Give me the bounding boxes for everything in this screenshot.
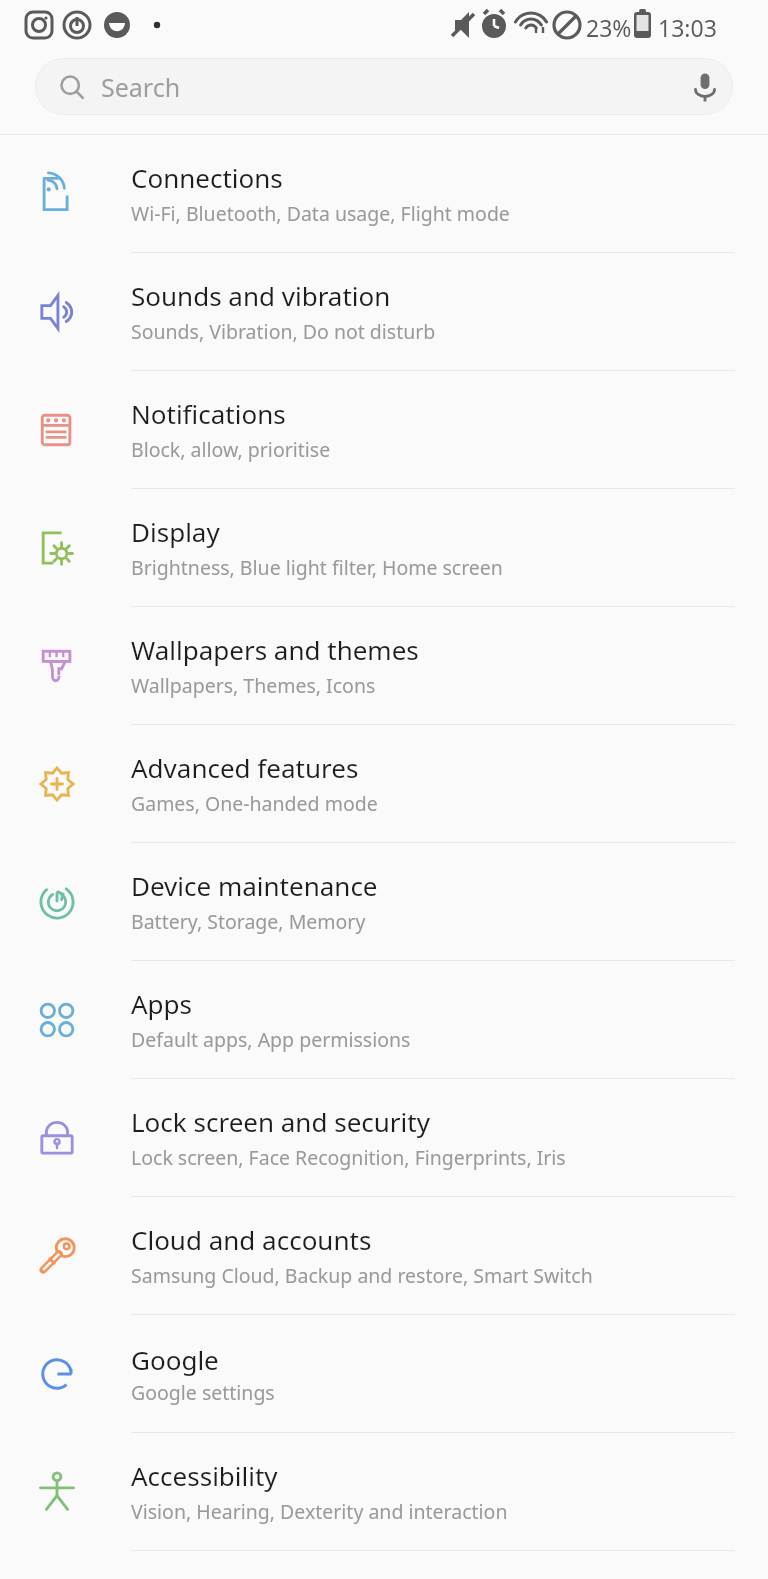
button[interactable]: Lock screen and security [0,1079,768,1197]
staticText: Apps [131,986,193,1021]
button[interactable]: Advanced features [0,725,768,843]
staticText: Display [131,514,220,549]
staticText: 23% [586,12,632,43]
staticText: Vision, Hearing, Dexterity and interacti… [131,1498,508,1525]
staticText: Samsung Cloud, Backup and restore, Smart… [131,1262,593,1289]
staticText: Wi-Fi, Bluetooth, Data usage, Flight mod… [131,200,510,227]
button[interactable]: Cloud and accounts [0,1197,768,1315]
button[interactable]: Device maintenance [0,843,768,961]
staticText: Games, One-handed mode [131,790,378,817]
staticText: Accessibility [131,1458,278,1493]
button[interactable]: Apps [0,961,768,1079]
staticText: Google [131,1342,219,1377]
staticText: Lock screen, Face Recognition, Fingerpri… [131,1144,566,1171]
staticText: Default apps, App permissions [131,1026,411,1053]
staticText: Wallpapers, Themes, Icons [131,672,376,699]
button[interactable]: Sounds and vibration [0,253,768,371]
staticText: Sounds, Vibration, Do not disturb [131,318,436,345]
staticText: Google settings [131,1379,275,1406]
staticText: Device maintenance [131,868,378,903]
button[interactable]: Voice search [677,59,733,115]
staticText: Advanced features [131,750,359,785]
staticText: Wallpapers and themes [131,632,419,667]
button[interactable]: Search settings [35,58,733,115]
staticText: Battery, Storage, Memory [131,908,366,935]
staticText: Search [101,70,181,104]
staticText: Connections [131,160,283,195]
button[interactable]: Accessibility [0,1433,768,1551]
button[interactable]: Notifications [0,371,768,489]
staticText: Lock screen and security [131,1104,430,1139]
staticText: Sounds and vibration [131,278,391,313]
staticText: Notifications [131,396,286,431]
staticText: Cloud and accounts [131,1222,372,1257]
staticText: 13:03 [658,12,717,43]
staticText: Brightness, Blue light filter, Home scre… [131,554,503,581]
staticText: Block, allow, prioritise [131,436,331,463]
button[interactable]: Display [0,489,768,607]
button[interactable]: Wallpapers and themes [0,607,768,725]
button[interactable]: Google [0,1315,768,1433]
button[interactable]: Connections [0,135,768,253]
